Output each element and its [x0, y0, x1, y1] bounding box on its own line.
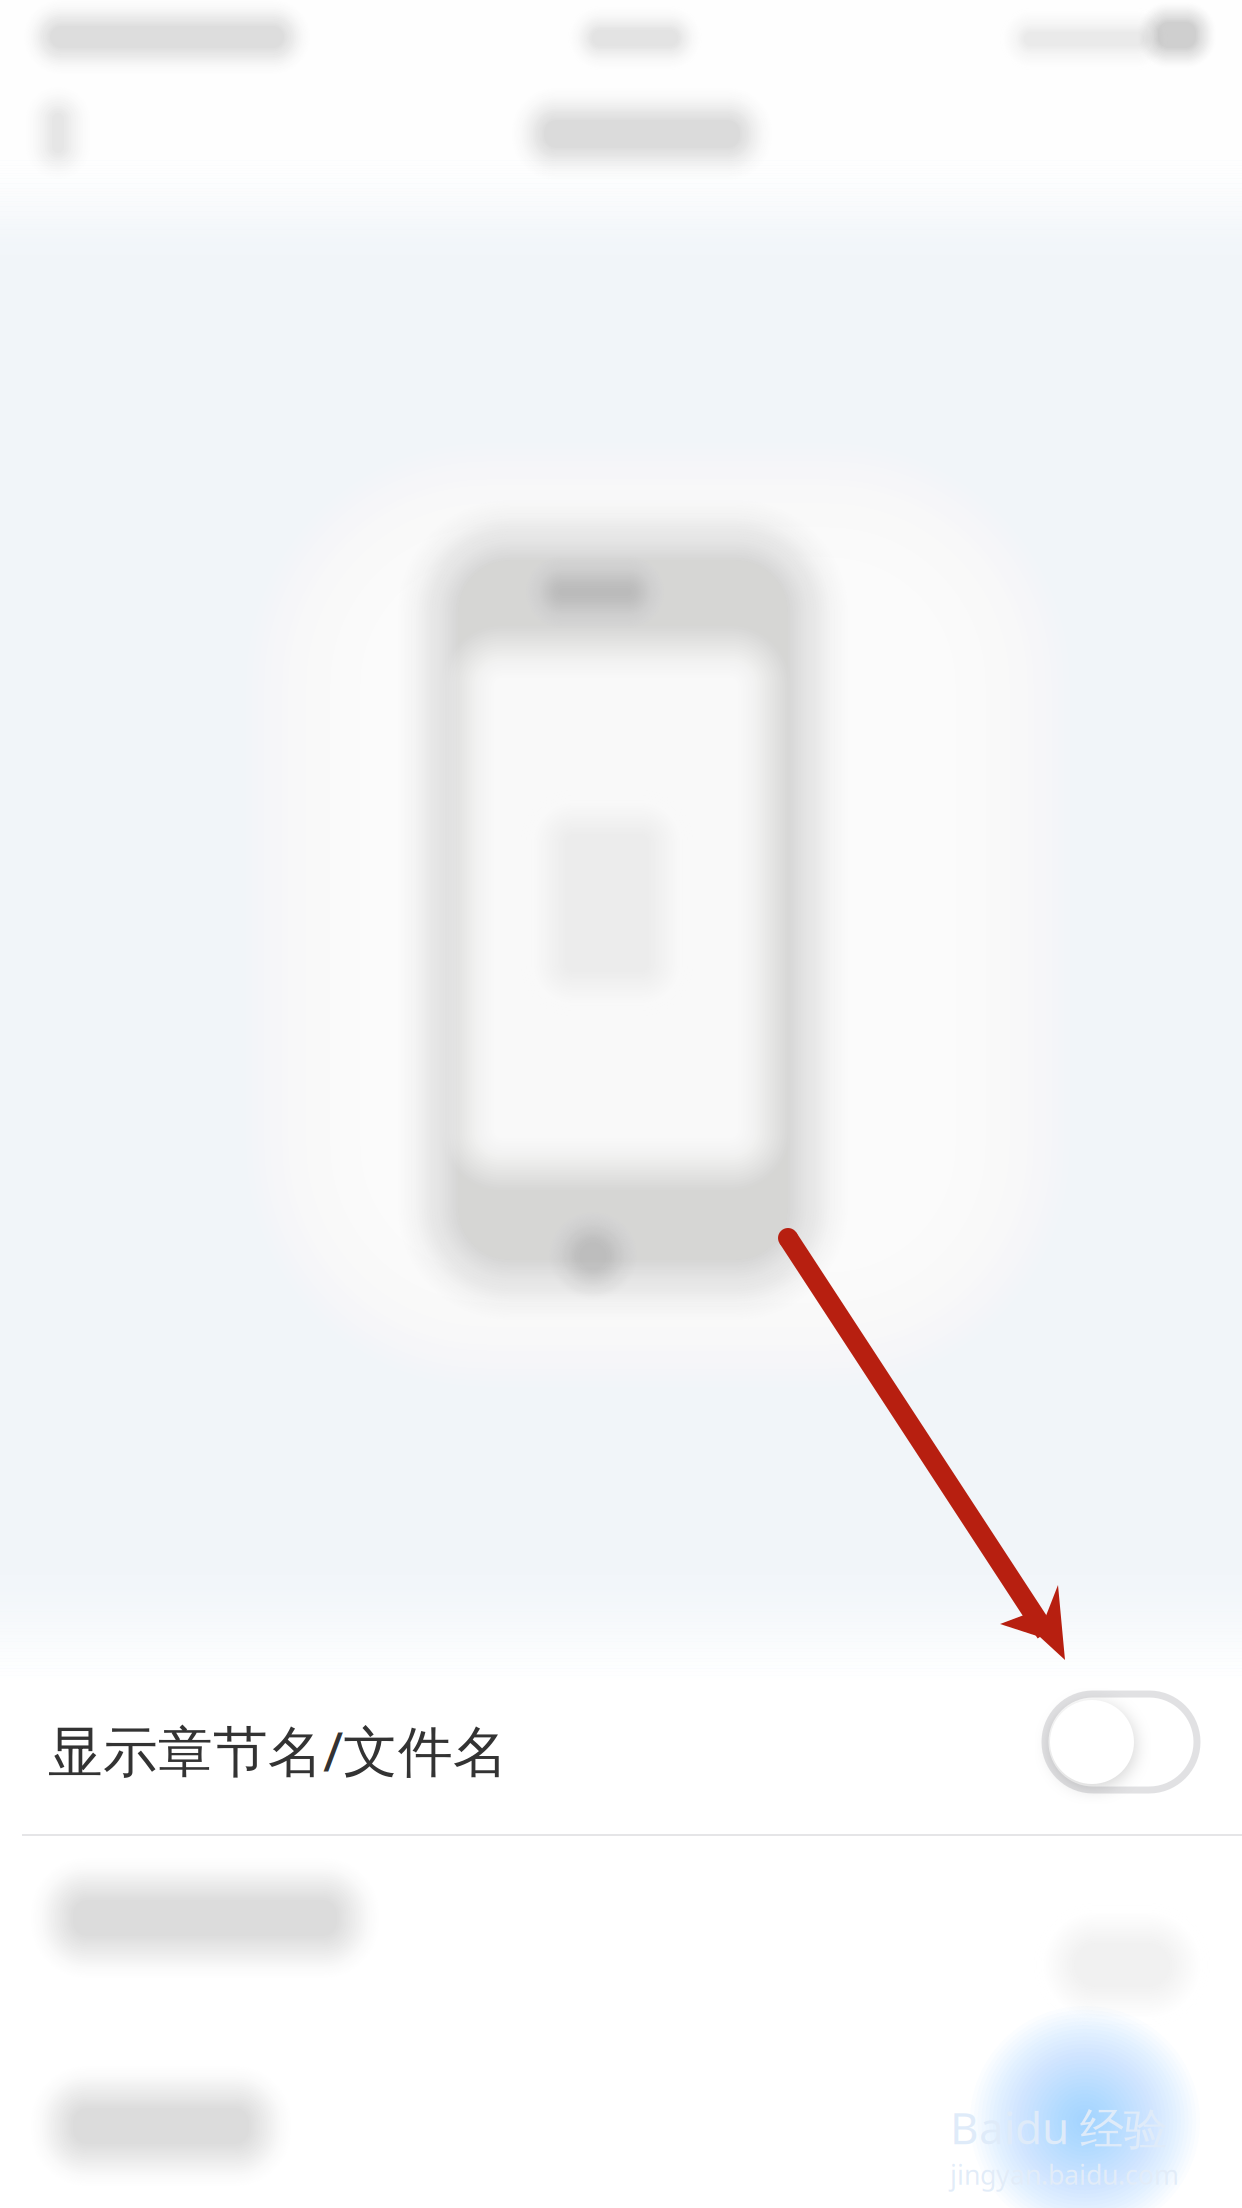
staticText: Baidu 经验 [950, 2098, 1168, 2157]
button[interactable]: Back [26, 78, 146, 188]
button[interactable]: Setting [31, 1822, 1242, 2030]
button[interactable]: Setting [31, 2030, 1242, 2208]
staticText: jingyan.baidu.com [950, 2157, 1179, 2192]
staticText: 显示章节名/文件名 [48, 1714, 508, 1787]
button[interactable]: 显示章节名/文件名 [0, 1612, 1242, 1836]
